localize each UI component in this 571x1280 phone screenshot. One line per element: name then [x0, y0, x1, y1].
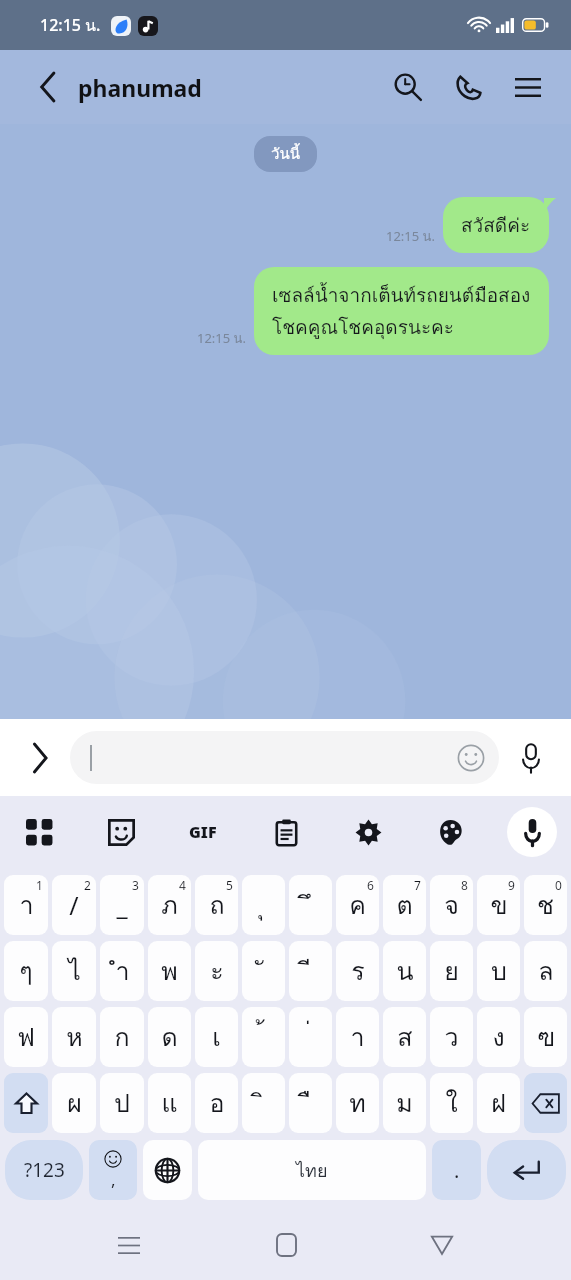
button[interactable]: ิ	[242, 1073, 285, 1133]
staticText: พ	[161, 951, 178, 991]
button[interactable]: ถ	[195, 875, 238, 935]
button[interactable]: ั	[242, 941, 285, 1001]
button[interactable]: Apps	[14, 807, 64, 857]
staticText: อ	[209, 1083, 225, 1123]
button[interactable]: ร	[336, 941, 379, 1001]
button[interactable]: ไทย	[198, 1140, 426, 1200]
button[interactable]: ล	[524, 941, 567, 1001]
button[interactable]: เซลล์น้ำจากเต็นท์รถยนต์มือสอง	[254, 267, 549, 355]
staticText: ไ	[68, 951, 81, 991]
button[interactable]: ฝ	[477, 1073, 520, 1133]
button[interactable]: ข	[477, 875, 520, 935]
button[interactable]: ช	[524, 875, 567, 935]
button[interactable]: จ	[430, 875, 473, 935]
button[interactable]: ี	[289, 941, 332, 1001]
button[interactable]: GIF	[178, 807, 228, 857]
button[interactable]: Emoji	[70, 731, 499, 784]
button[interactable]: Settings	[343, 807, 393, 857]
button[interactable]: Enter	[487, 1140, 566, 1200]
button[interactable]: ื	[289, 1073, 332, 1133]
button[interactable]: Voice input	[507, 807, 557, 857]
staticText: ว	[444, 1017, 459, 1057]
button[interactable]: ง	[477, 1007, 520, 1067]
button[interactable]: ย	[430, 941, 473, 1001]
staticText: ไทย	[296, 1156, 328, 1185]
staticText: ใ	[445, 1083, 458, 1123]
button[interactable]: ท	[336, 1073, 379, 1133]
button[interactable]: Voice message	[509, 736, 553, 780]
staticText: _	[116, 888, 128, 922]
button[interactable]: ด	[148, 1007, 191, 1067]
staticText: วันนี้	[271, 142, 300, 166]
button[interactable]: ้	[242, 1007, 285, 1067]
button[interactable]: Call	[445, 64, 491, 110]
button[interactable]: เ	[195, 1007, 238, 1067]
staticText: า	[350, 1017, 365, 1057]
staticText: บ	[491, 951, 507, 991]
button[interactable]: ำ	[100, 941, 144, 1001]
staticText: 1	[36, 877, 43, 893]
staticText: 12:15 น.	[40, 13, 101, 38]
button[interactable]: า	[336, 1007, 379, 1067]
button[interactable]: Back	[28, 67, 68, 107]
button[interactable]: น	[383, 941, 426, 1001]
button[interactable]: ะ	[195, 941, 238, 1001]
button[interactable]: ผ	[52, 1073, 96, 1133]
button[interactable]: Backspace	[524, 1073, 567, 1133]
button[interactable]: ุ	[242, 875, 285, 935]
staticText: ข	[490, 885, 508, 925]
button[interactable]: Clipboard	[261, 807, 311, 857]
button[interactable]: ฃ	[524, 1007, 567, 1067]
button[interactable]: ว	[430, 1007, 473, 1067]
staticText: 4	[179, 877, 186, 893]
button[interactable]: ค	[336, 875, 379, 935]
button[interactable]: Stickers	[96, 807, 146, 857]
button[interactable]: ภ	[148, 875, 191, 935]
staticText: .	[454, 1157, 460, 1184]
staticText: /	[69, 888, 79, 922]
staticText: 2	[84, 877, 91, 893]
button[interactable]: Expand	[18, 736, 62, 780]
button[interactable]: ป	[100, 1073, 144, 1133]
button[interactable]: Change language	[143, 1140, 192, 1200]
staticText: GIF	[189, 821, 217, 843]
button[interactable]: ฟ	[4, 1007, 48, 1067]
staticText: 5	[226, 877, 233, 893]
button[interactable]: ห	[52, 1007, 96, 1067]
staticText: ,	[111, 1168, 116, 1191]
button[interactable]: Search history	[385, 64, 431, 110]
staticText: ด	[161, 1017, 178, 1057]
button[interactable]: วันนี้	[254, 136, 317, 172]
button[interactable]: ไ	[52, 941, 96, 1001]
button[interactable]: Emoji	[456, 743, 486, 773]
button[interactable]: ก	[100, 1007, 144, 1067]
button[interactable]: า	[4, 875, 48, 935]
button[interactable]: แ	[148, 1073, 191, 1133]
staticText: ำ	[115, 951, 130, 991]
button[interactable]: Home	[258, 1217, 314, 1273]
button[interactable]: ๆ	[4, 941, 48, 1001]
button[interactable]: พ	[148, 941, 191, 1001]
button[interactable]: .	[432, 1140, 481, 1200]
button[interactable]: _	[100, 875, 144, 935]
button[interactable]: ม	[383, 1073, 426, 1133]
button[interactable]: ึ	[289, 875, 332, 935]
button[interactable]: ่	[289, 1007, 332, 1067]
button[interactable]: บ	[477, 941, 520, 1001]
button[interactable]: Emoji and comma	[89, 1140, 137, 1200]
button[interactable]: /	[52, 875, 96, 935]
button[interactable]: สวัสดีค่ะ	[443, 197, 549, 253]
button[interactable]: ?123	[5, 1140, 83, 1200]
button[interactable]: Recents	[101, 1217, 157, 1273]
button[interactable]: Shift	[4, 1073, 48, 1133]
staticText: ?123	[24, 1157, 65, 1183]
button[interactable]: Theme	[425, 807, 475, 857]
staticText: น	[396, 951, 414, 991]
button[interactable]: ส	[383, 1007, 426, 1067]
button[interactable]: อ	[195, 1073, 238, 1133]
button[interactable]: Menu	[505, 64, 551, 110]
button[interactable]: Back	[414, 1217, 470, 1273]
staticText: ป	[114, 1083, 130, 1123]
button[interactable]: ต	[383, 875, 426, 935]
button[interactable]: ใ	[430, 1073, 473, 1133]
